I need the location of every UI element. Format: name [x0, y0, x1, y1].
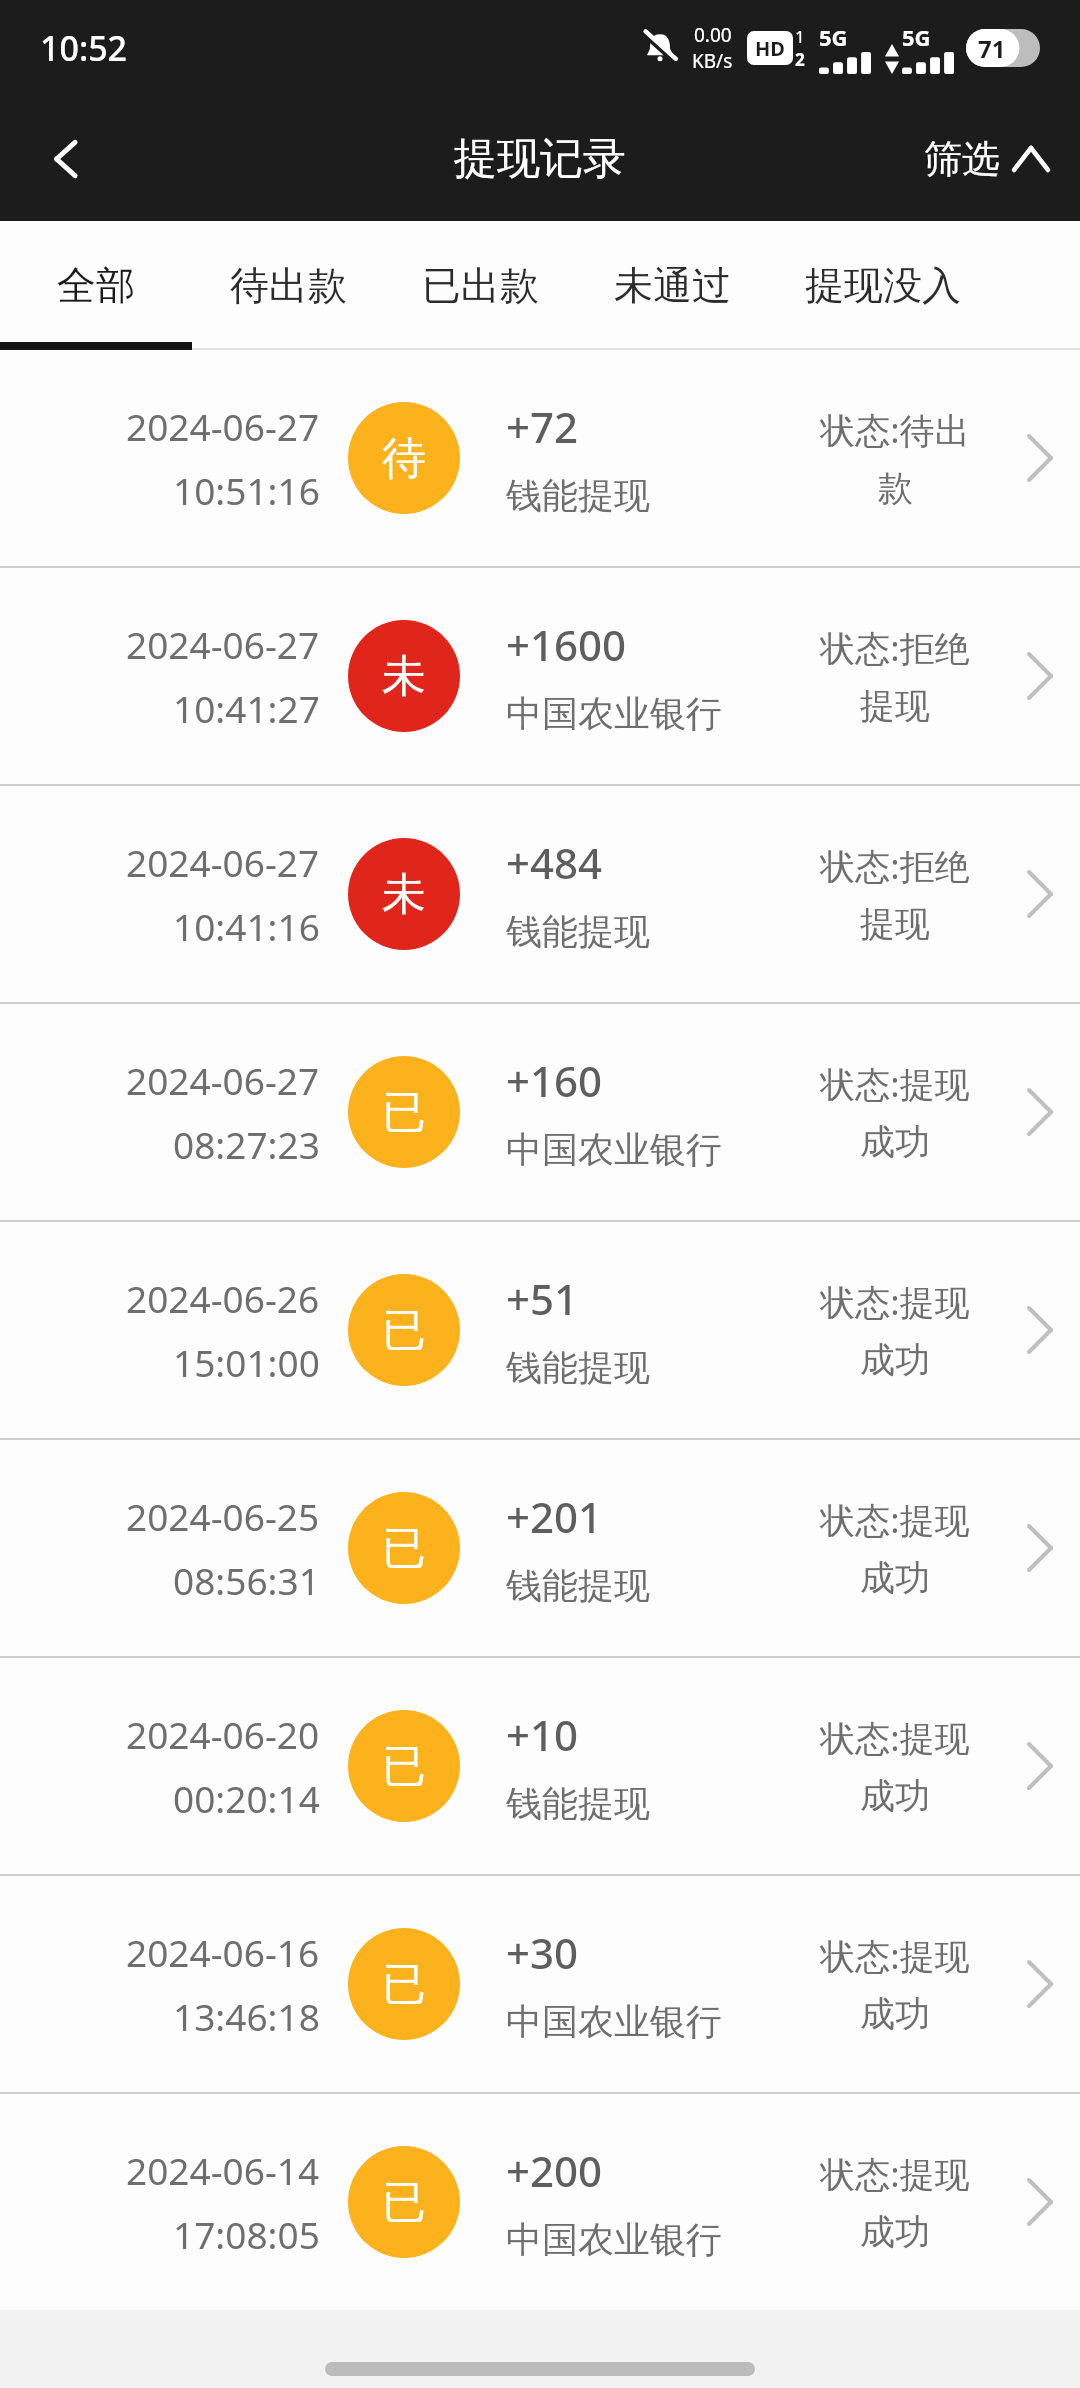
staticText: 08:27:23	[173, 1119, 320, 1169]
staticText: 17:08:05	[173, 2209, 320, 2259]
staticText: 2024-06-27	[126, 837, 320, 887]
staticText: +72	[506, 398, 579, 455]
staticText: 10:41:27	[173, 683, 320, 733]
staticText: 提现记录	[454, 132, 626, 186]
staticText: 1	[795, 25, 805, 48]
staticText: KB/s	[692, 48, 733, 74]
staticText: 已	[382, 2175, 426, 2230]
staticText: 0.00	[694, 22, 732, 48]
staticText: 已	[382, 1521, 426, 1576]
staticText: 00:20:14	[173, 1773, 320, 1823]
staticText: 已	[382, 1085, 426, 1140]
staticText: 08:56:31	[173, 1555, 320, 1605]
staticText: 待出款	[230, 261, 347, 310]
staticText: 成功	[860, 1992, 930, 2036]
staticText: +1600	[506, 616, 627, 673]
staticText: 15:01:00	[173, 1337, 320, 1387]
staticText: 中国农业银行	[506, 691, 722, 736]
button[interactable]: 2024-06-26	[0, 1222, 1080, 1438]
staticText: 未	[382, 867, 426, 922]
staticText: 款	[878, 466, 913, 510]
staticText: 10:51:16	[173, 465, 320, 515]
staticText: 筛选	[924, 135, 1000, 183]
staticText: 5G	[902, 22, 931, 52]
staticText: 2024-06-26	[126, 1273, 320, 1323]
button[interactable]: 筛选	[916, 121, 1056, 197]
staticText: 状态:提现	[820, 1060, 970, 1108]
staticText: +10	[506, 1706, 579, 1763]
staticText: 全部	[57, 261, 135, 310]
staticText: +484	[506, 834, 603, 891]
staticText: 状态:提现	[820, 1496, 970, 1544]
button[interactable]: 2024-06-27	[0, 568, 1080, 784]
staticText: 2024-06-27	[126, 1055, 320, 1105]
staticText: 钱能提现	[506, 1345, 650, 1390]
button[interactable]: 2024-06-27	[0, 1004, 1080, 1220]
staticText: 成功	[860, 2210, 930, 2254]
staticText: 状态:拒绝	[820, 842, 970, 890]
staticText: 中国农业银行	[506, 2217, 722, 2262]
staticText: 已	[382, 1739, 426, 1794]
button[interactable]: 2024-06-27	[0, 786, 1080, 1002]
staticText: 中国农业银行	[506, 1127, 722, 1172]
staticText: 状态:拒绝	[820, 624, 970, 672]
staticText: 成功	[860, 1556, 930, 1600]
staticText: 状态:提现	[820, 2150, 970, 2198]
staticText: 13:46:18	[173, 1991, 320, 2041]
staticText: 提现	[860, 684, 930, 728]
staticText: 成功	[860, 1120, 930, 1164]
button[interactable]: 全部	[0, 221, 192, 350]
staticText: +160	[506, 1052, 603, 1109]
staticText: 10:41:16	[173, 901, 320, 951]
staticText: 2024-06-25	[126, 1491, 320, 1541]
staticText: 状态:提现	[820, 1714, 970, 1762]
staticText: HD	[755, 35, 785, 62]
staticText: 2024-06-14	[126, 2145, 320, 2195]
staticText: 2024-06-27	[126, 401, 320, 451]
staticText: 钱能提现	[506, 1563, 650, 1608]
staticText: 提现没入	[805, 261, 961, 310]
staticText: 钱能提现	[506, 1781, 650, 1826]
staticText: 已	[382, 1957, 426, 2012]
staticText: 成功	[860, 1338, 930, 1382]
staticText: 2024-06-16	[126, 1927, 320, 1977]
button[interactable]: 2024-06-27	[0, 350, 1080, 566]
staticText: +51	[506, 1270, 579, 1327]
button[interactable]: 已出款	[384, 221, 576, 350]
button[interactable]: 2024-06-16	[0, 1876, 1080, 2092]
staticText: 未	[382, 649, 426, 704]
staticText: +200	[506, 2142, 603, 2199]
staticText: 2024-06-27	[126, 619, 320, 669]
staticText: 未通过	[614, 261, 731, 310]
staticText: +201	[506, 1488, 603, 1545]
button[interactable]: 待出款	[192, 221, 384, 350]
button[interactable]: 未通过	[576, 221, 768, 350]
button[interactable]: 2024-06-14	[0, 2094, 1080, 2310]
staticText: 5G	[819, 22, 848, 52]
staticText: 钱能提现	[506, 473, 650, 518]
staticText: 中国农业银行	[506, 1999, 722, 2044]
staticText: 钱能提现	[506, 909, 650, 954]
staticText: 待	[382, 431, 426, 486]
staticText: 状态:提现	[820, 1932, 970, 1980]
staticText: 成功	[860, 1774, 930, 1818]
staticText: 已出款	[422, 261, 539, 310]
staticText: 2024-06-20	[126, 1709, 320, 1759]
staticText: 状态:待出	[820, 406, 970, 454]
staticText: 状态:提现	[820, 1278, 970, 1326]
button[interactable]: 2024-06-20	[0, 1658, 1080, 1874]
staticText: 2	[795, 48, 805, 71]
staticText: 提现	[860, 902, 930, 946]
staticText: 已	[382, 1303, 426, 1358]
button[interactable]: 提现没入	[768, 221, 998, 350]
staticText: 10:52	[40, 25, 128, 71]
button[interactable]: 2024-06-25	[0, 1440, 1080, 1656]
staticText: 71	[978, 32, 1006, 65]
button[interactable]: Back	[20, 111, 116, 207]
staticText: +30	[506, 1924, 579, 1981]
